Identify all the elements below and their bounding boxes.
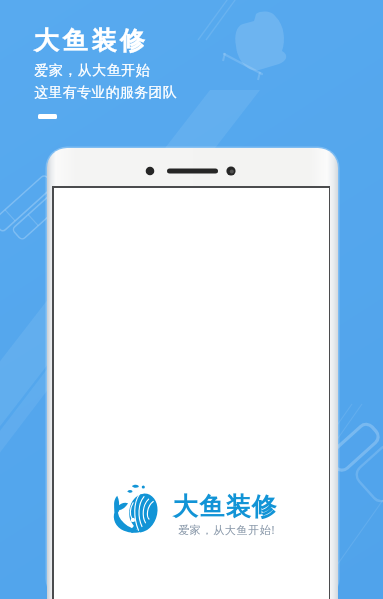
staticText: 这里有专业的服务团队 <box>34 84 177 102</box>
button[interactable]: 大鱼装修 <box>34 25 177 119</box>
staticText: 大鱼装修 <box>173 491 278 522</box>
staticText: 爱家，从大鱼开始! <box>178 522 276 537</box>
button[interactable]: 大鱼装修 启动页 <box>0 0 383 599</box>
button[interactable]: 大鱼装修 <box>101 483 278 537</box>
staticText: 大鱼装修 <box>34 25 149 56</box>
staticText: 爱家，从大鱼开始 <box>34 62 150 80</box>
